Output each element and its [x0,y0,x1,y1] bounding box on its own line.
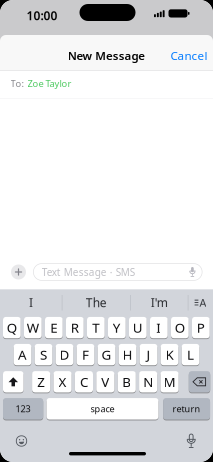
button[interactable]: F [77,343,94,366]
button[interactable]: The [62,293,130,311]
staticText: The [86,294,107,310]
button[interactable]: B [118,371,136,393]
staticText: Y [113,319,121,336]
button[interactable]: V [96,371,114,393]
staticText: Text Message · SMS [42,265,135,279]
staticText: G [101,346,111,363]
staticText: I [156,319,161,336]
staticText: B [122,373,131,391]
staticText: Q [7,319,17,336]
staticText: A [18,346,27,363]
staticText: T [92,319,99,336]
button[interactable]: D [56,343,73,366]
button[interactable] [15,435,27,447]
staticText: J [146,346,150,363]
staticText: C [80,373,88,391]
staticText: H [122,346,132,363]
button[interactable]: I [150,316,168,339]
staticText: K [165,346,173,363]
button[interactable]: S [35,343,52,366]
button[interactable]: P [192,316,210,339]
staticText: O [175,319,185,336]
button[interactable] [3,371,23,393]
staticText: X [58,373,66,391]
button[interactable]: I'm [130,293,188,311]
button[interactable]: To: [0,69,213,97]
button[interactable]: Y [108,316,126,339]
staticText: To: [10,77,24,90]
button[interactable]: return [163,398,210,420]
staticText: M [163,373,175,391]
button[interactable]: J [140,343,157,366]
staticText: P [197,319,205,336]
button[interactable]: Text Message · SMS [33,263,202,281]
staticText: Z [37,373,45,391]
button[interactable]: H [119,343,136,366]
staticText: 10:00 [26,7,57,23]
button[interactable]: E [45,316,63,339]
staticText: Cancel [170,48,207,63]
staticText: New Message [68,48,145,63]
staticText: E [50,319,57,336]
button[interactable]: A [194,296,207,308]
staticText: L [187,346,194,363]
button[interactable]: 123 [3,398,43,420]
staticText: R [71,319,79,336]
staticText: I'm [151,294,168,310]
button[interactable]: space [47,398,158,420]
staticText: Zoe Taylor [27,77,71,90]
button[interactable]: W [24,316,42,339]
staticText: S [40,346,47,363]
button[interactable] [11,264,26,279]
button[interactable]: U [129,316,147,339]
button[interactable]: K [161,343,178,366]
staticText: F [82,346,89,363]
button[interactable]: R [66,316,84,339]
button[interactable]: C [75,371,93,393]
button[interactable]: Q [3,316,21,339]
button[interactable]: M [160,371,179,393]
button[interactable]: O [171,316,189,339]
staticText: V [101,373,109,391]
staticText: W [27,319,39,336]
staticText: A [199,295,206,310]
button[interactable]: L [182,343,199,366]
button[interactable]: Z [32,371,50,393]
button[interactable]: Cancel [170,48,207,63]
button[interactable]: A [14,343,31,366]
button[interactable]: G [98,343,115,366]
staticText: 123 [16,403,31,415]
button[interactable]: I [0,293,62,311]
staticText: return [173,403,201,415]
staticText: D [59,346,69,363]
button[interactable]: X [53,371,72,393]
staticText: space [90,403,114,415]
button[interactable] [187,434,196,448]
staticText: I [29,294,33,310]
button[interactable]: T [87,316,105,339]
button[interactable] [189,371,210,393]
staticText: N [143,373,153,391]
staticText: U [133,319,143,336]
button[interactable]: N [139,371,157,393]
